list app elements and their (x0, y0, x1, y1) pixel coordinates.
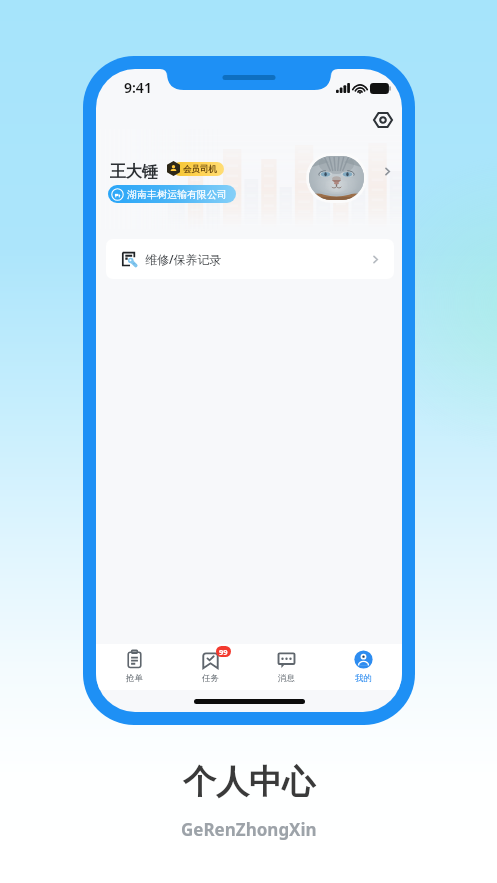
button[interactable]: 99 (172, 648, 248, 686)
staticText: GeRenZhongXin (181, 818, 317, 841)
button[interactable]: 王大锤 (96, 151, 402, 201)
staticText: 消息 (278, 673, 295, 684)
staticText: 99 (219, 647, 228, 657)
button[interactable]: 我的 (325, 648, 402, 686)
staticText: 王大锤 (110, 162, 158, 182)
button[interactable]: 维修/保养记录 (106, 239, 394, 279)
button[interactable]: 湖南丰树运输有限公司 (108, 185, 236, 203)
staticText: 维修/保养记录 (145, 251, 222, 267)
button[interactable]: 消息 (248, 648, 325, 686)
staticText: 我的 (355, 673, 372, 684)
staticText: 任务 (202, 673, 219, 684)
staticText: 抢单 (126, 673, 143, 684)
staticText: 湖南丰树运输有限公司 (127, 188, 227, 201)
staticText: 个人中心 (183, 761, 315, 803)
staticText: 会员司机 (183, 164, 217, 175)
staticText: 9:41 (124, 78, 152, 97)
button[interactable]: 抢单 (96, 648, 172, 686)
button[interactable]: Settings (368, 105, 398, 135)
